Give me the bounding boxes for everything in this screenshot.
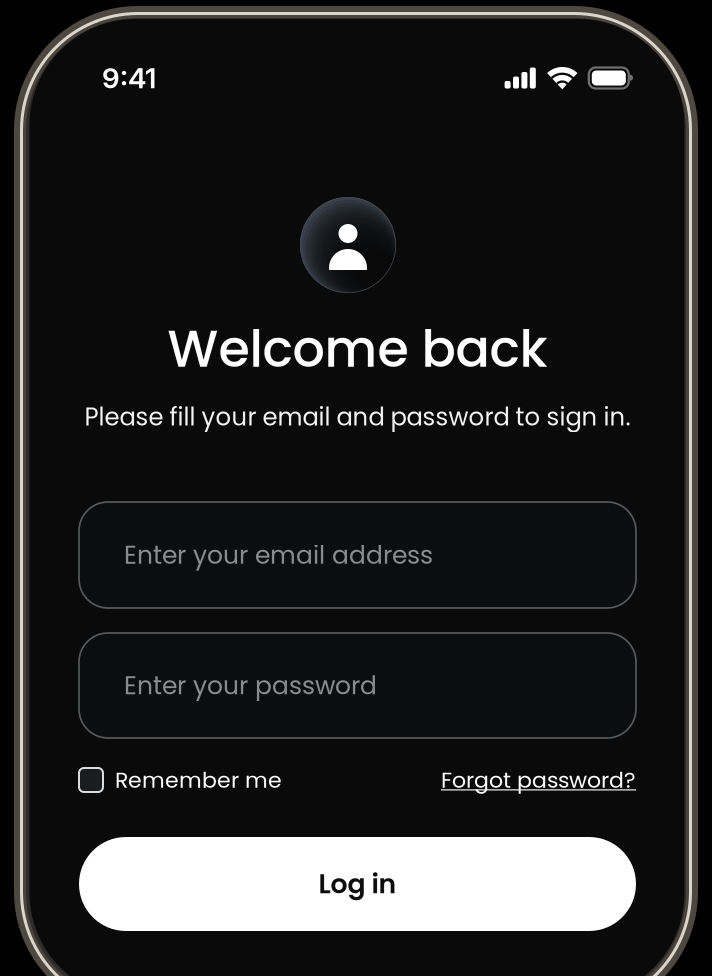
button[interactable]: Enter your password bbox=[79, 633, 636, 738]
button[interactable]: Log in bbox=[79, 837, 636, 931]
button[interactable]: Enter your email address bbox=[79, 502, 636, 608]
staticText: Forgot password? bbox=[441, 765, 636, 795]
staticText: Welcome back bbox=[167, 313, 547, 384]
staticText: Please fill your email and password to s… bbox=[84, 400, 630, 434]
button[interactable]: Remember me bbox=[79, 765, 282, 795]
staticText: Enter your password bbox=[124, 668, 377, 703]
button[interactable]: Forgot password? bbox=[441, 765, 636, 795]
staticText: Log in bbox=[318, 865, 396, 903]
staticText: Remember me bbox=[115, 765, 282, 795]
staticText: 9:41 bbox=[102, 61, 156, 95]
staticText: Enter your email address bbox=[124, 537, 433, 572]
